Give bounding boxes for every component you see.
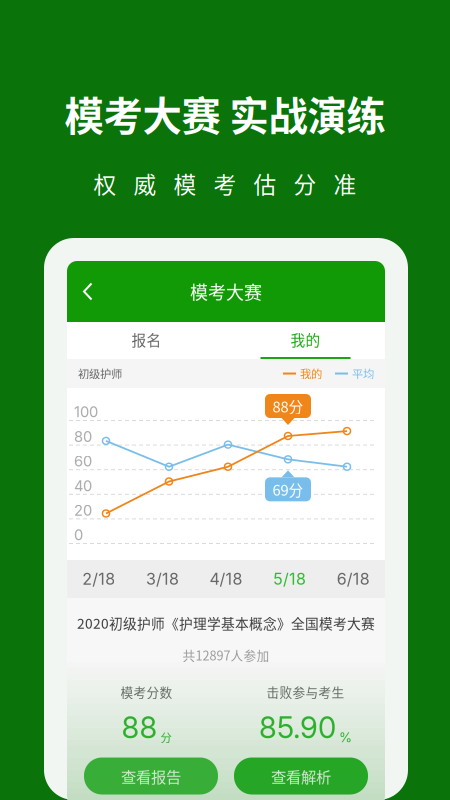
- staticText: 85.90: [259, 710, 336, 745]
- staticText: 模考分数: [120, 683, 172, 701]
- staticText: 0: [74, 526, 83, 544]
- staticText: 2/18: [82, 569, 115, 589]
- staticText: 3/18: [146, 569, 179, 589]
- button[interactable]: 2/18: [67, 560, 131, 598]
- button[interactable]: 我的: [226, 322, 385, 359]
- staticText: 2020初级护师《护理学基本概念》全国模考大赛: [77, 613, 375, 633]
- staticText: 5/18: [273, 569, 306, 589]
- button[interactable]: 5/18: [258, 560, 321, 598]
- staticText: 100: [74, 403, 98, 421]
- staticText: 60: [74, 452, 92, 470]
- button[interactable]: 返回: [67, 261, 109, 322]
- staticText: 88: [121, 710, 157, 745]
- button[interactable]: 查看解析: [234, 757, 368, 794]
- staticText: 查看解析: [271, 765, 331, 787]
- staticText: 6/18: [337, 569, 370, 589]
- staticText: 查看报告: [121, 765, 181, 787]
- staticText: 共12897人参加: [182, 646, 269, 664]
- staticText: 平均: [352, 365, 374, 382]
- staticText: 分: [160, 729, 171, 745]
- button[interactable]: 查看报告: [84, 757, 218, 794]
- staticText: 模考大赛 实战演练: [64, 85, 385, 142]
- staticText: 80: [74, 428, 92, 445]
- staticText: 初级护师: [78, 365, 122, 382]
- staticText: 权 威 模 考 估 分 准: [93, 167, 356, 200]
- staticText: 我的: [290, 329, 320, 350]
- staticText: 4/18: [209, 569, 242, 589]
- staticText: 我的: [300, 365, 322, 382]
- button[interactable]: 报名: [67, 322, 226, 359]
- button[interactable]: 6/18: [321, 560, 385, 598]
- button[interactable]: 4/18: [194, 560, 258, 598]
- button[interactable]: 3/18: [131, 560, 194, 598]
- staticText: 击败参与考生: [266, 683, 344, 701]
- staticText: 报名: [131, 329, 161, 350]
- staticText: 模考大赛: [190, 278, 262, 305]
- staticText: 20: [74, 501, 92, 519]
- staticText: 88分: [272, 395, 303, 417]
- staticText: 40: [74, 477, 92, 495]
- staticText: %: [339, 729, 352, 745]
- staticText: 69分: [272, 479, 303, 500]
